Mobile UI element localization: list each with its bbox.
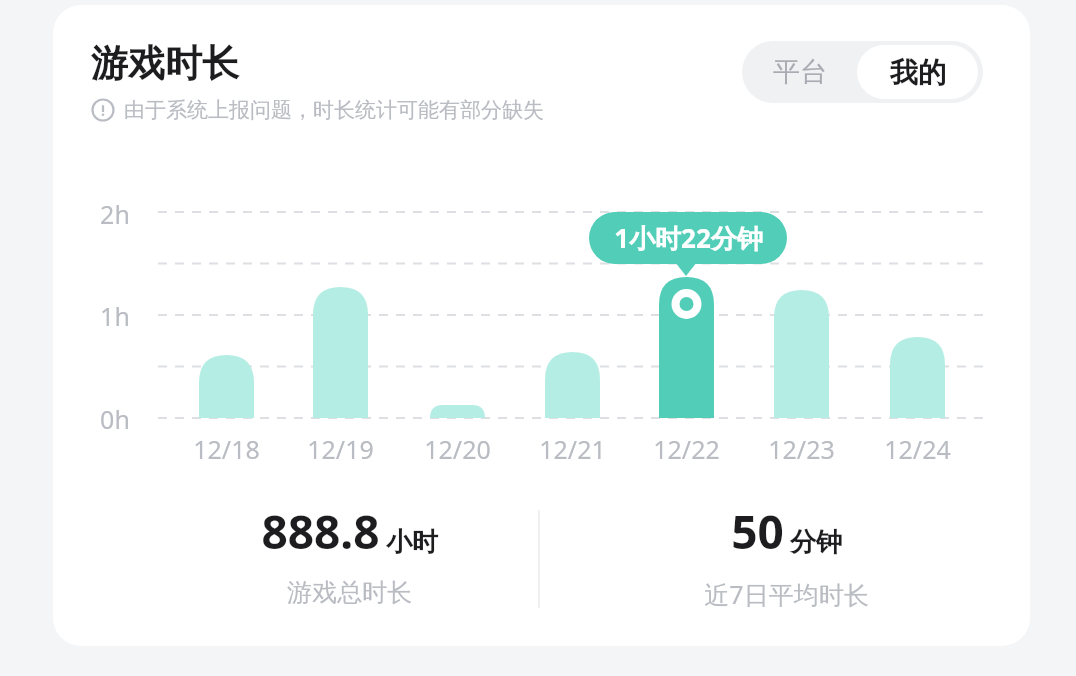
staticText: 0h [100,402,130,434]
staticText: 50 [731,500,784,563]
staticText: 12/18 [193,432,260,466]
staticText: 平台 [773,55,827,89]
staticText: 12/23 [768,432,835,466]
staticText: 12/21 [539,432,606,466]
staticText: 12/24 [884,432,951,466]
button[interactable]: 我的 [857,45,978,99]
staticText: 我的 [890,55,946,90]
staticText: 游戏总时长 [287,577,412,608]
button[interactable]: 888.8 [207,500,492,608]
staticText: 由于系统上报问题，时长统计可能有部分缺失 [124,97,544,123]
staticText: 游戏时长 [91,40,239,87]
button[interactable]: 50 [644,500,929,611]
staticText: 888.8 [261,500,380,563]
staticText: 近7日平均时长 [704,577,869,611]
staticText: 分钟 [790,526,842,559]
staticText: 12/22 [653,432,720,466]
staticText: 2h [100,197,130,229]
staticText: 12/20 [424,432,491,466]
staticText: 小时 [386,526,438,559]
button[interactable]: 平台 [742,41,857,103]
staticText: 1h [100,299,130,331]
staticText: 12/19 [307,432,374,466]
button[interactable]: 1小时22分钟 [589,212,787,264]
staticText: 1小时22分钟 [614,220,763,256]
